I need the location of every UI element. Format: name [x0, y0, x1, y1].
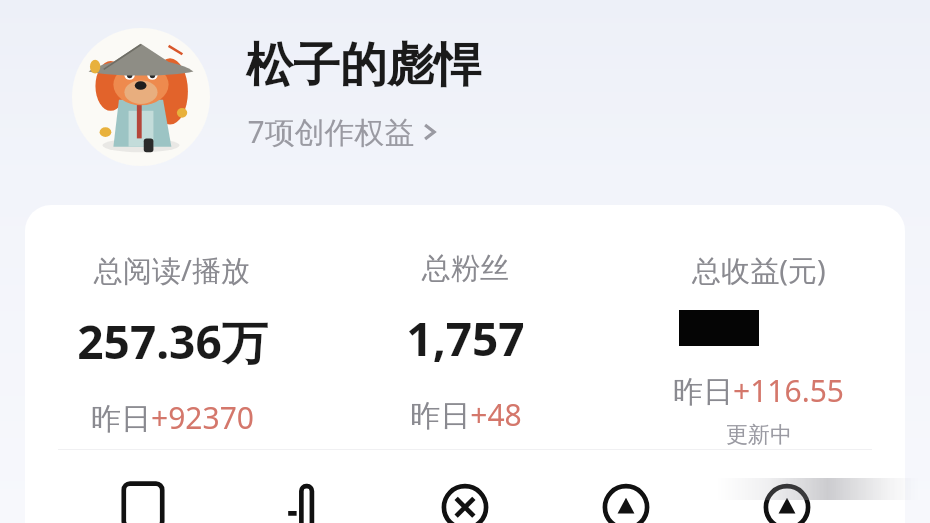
- staticText: 昨日+48: [410, 394, 522, 435]
- button[interactable]: Close: [422, 475, 508, 523]
- button[interactable]: 总阅读/播放: [25, 205, 319, 438]
- staticText: 松子的彪悍: [246, 36, 481, 95]
- staticText: 总阅读/播放: [94, 250, 250, 290]
- staticText: 昨日+116.55: [673, 370, 844, 411]
- staticText: 昨日+92370: [91, 397, 254, 438]
- button[interactable]: 总粉丝: [319, 205, 612, 435]
- button[interactable]: Upload: [583, 475, 669, 523]
- staticText: 更新中: [726, 421, 792, 449]
- button[interactable]: 7项创作权益: [246, 109, 438, 154]
- button[interactable]: 总收益(元): [612, 205, 905, 449]
- staticText: 257.36万: [77, 310, 268, 373]
- button[interactable]: Articles: [100, 475, 186, 523]
- staticText: 1,757: [406, 307, 525, 370]
- staticText: 7项创作权益: [247, 111, 415, 152]
- button[interactable]: Statistics: [261, 475, 347, 523]
- button[interactable]: More: [744, 475, 830, 523]
- button[interactable]: Profile avatar: [72, 28, 210, 166]
- staticText: 总收益(元): [692, 250, 826, 290]
- staticText: 总粉丝: [422, 250, 509, 287]
